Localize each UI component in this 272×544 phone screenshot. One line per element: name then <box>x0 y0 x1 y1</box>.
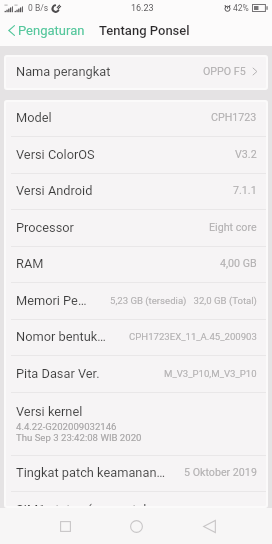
button[interactable]: Versi Android <box>4 173 268 210</box>
staticText: 4.4.22-G202009032146 <box>16 421 117 432</box>
staticText: CPH1723 <box>211 111 257 124</box>
staticText: Pita Dasar Ver. <box>16 366 100 381</box>
staticText: Memori Pe… <box>16 293 87 308</box>
staticText: 42% <box>233 3 249 13</box>
button[interactable]: Versi kernel <box>4 393 268 456</box>
staticText: Pengaturan <box>18 23 85 38</box>
staticText: OPPO F5 <box>203 65 246 78</box>
staticText: Nomor bentuk… <box>16 329 106 344</box>
staticText: 7.1.1 <box>233 184 257 197</box>
button[interactable]: Pengaturan <box>0 15 88 45</box>
staticText: 5,23 GB (tersedia) 32,0 GB (Total) <box>110 295 257 306</box>
button[interactable]: Back <box>189 508 229 544</box>
button[interactable]: Processor <box>4 210 268 247</box>
staticText: 4,00 GB <box>220 257 257 270</box>
staticText: M_V3_P10,M_V3_P10 <box>164 368 257 379</box>
staticText: Thu Sep 3 23:42:08 WIB 2020 <box>16 432 142 443</box>
staticText: V3.2 <box>235 148 257 161</box>
button[interactable]: Nomor bentuk… <box>4 319 268 356</box>
button[interactable]: Home <box>116 508 156 544</box>
staticText: Eight core <box>209 221 257 234</box>
button[interactable]: RAM <box>4 246 268 283</box>
staticText: CPH1723EX_11_A.45_200903 <box>129 331 257 342</box>
button[interactable]: Tingkat patch keamanan… <box>4 455 268 492</box>
button[interactable]: SIM1 status (nomor telepon… <box>4 492 268 508</box>
button[interactable]: Pita Dasar Ver. <box>4 356 268 393</box>
staticText: 0 B/s <box>28 3 49 13</box>
staticText: Versi Android <box>16 183 93 198</box>
staticText: Model <box>16 110 52 125</box>
staticText: RAM <box>16 256 44 271</box>
staticText: SIM1 status (nomor telepon… <box>16 502 184 508</box>
staticText: 16.23 <box>131 3 154 14</box>
staticText: 5 Oktober 2019 <box>184 466 257 479</box>
staticText: Versi ColorOS <box>16 147 95 162</box>
button[interactable]: Versi ColorOS <box>4 137 268 174</box>
staticText: Processor <box>16 220 74 235</box>
staticText: Tentang Ponsel <box>99 23 190 38</box>
staticText: Tingkat patch keamanan… <box>16 465 166 480</box>
staticText: Versi kernel <box>16 404 83 419</box>
staticText: Nama perangkat <box>16 64 111 79</box>
button[interactable]: Model <box>4 100 268 137</box>
button[interactable]: Recent apps <box>45 508 85 544</box>
button[interactable]: Nama perangkat <box>4 55 268 90</box>
button[interactable]: Memori Pe… <box>4 283 268 320</box>
